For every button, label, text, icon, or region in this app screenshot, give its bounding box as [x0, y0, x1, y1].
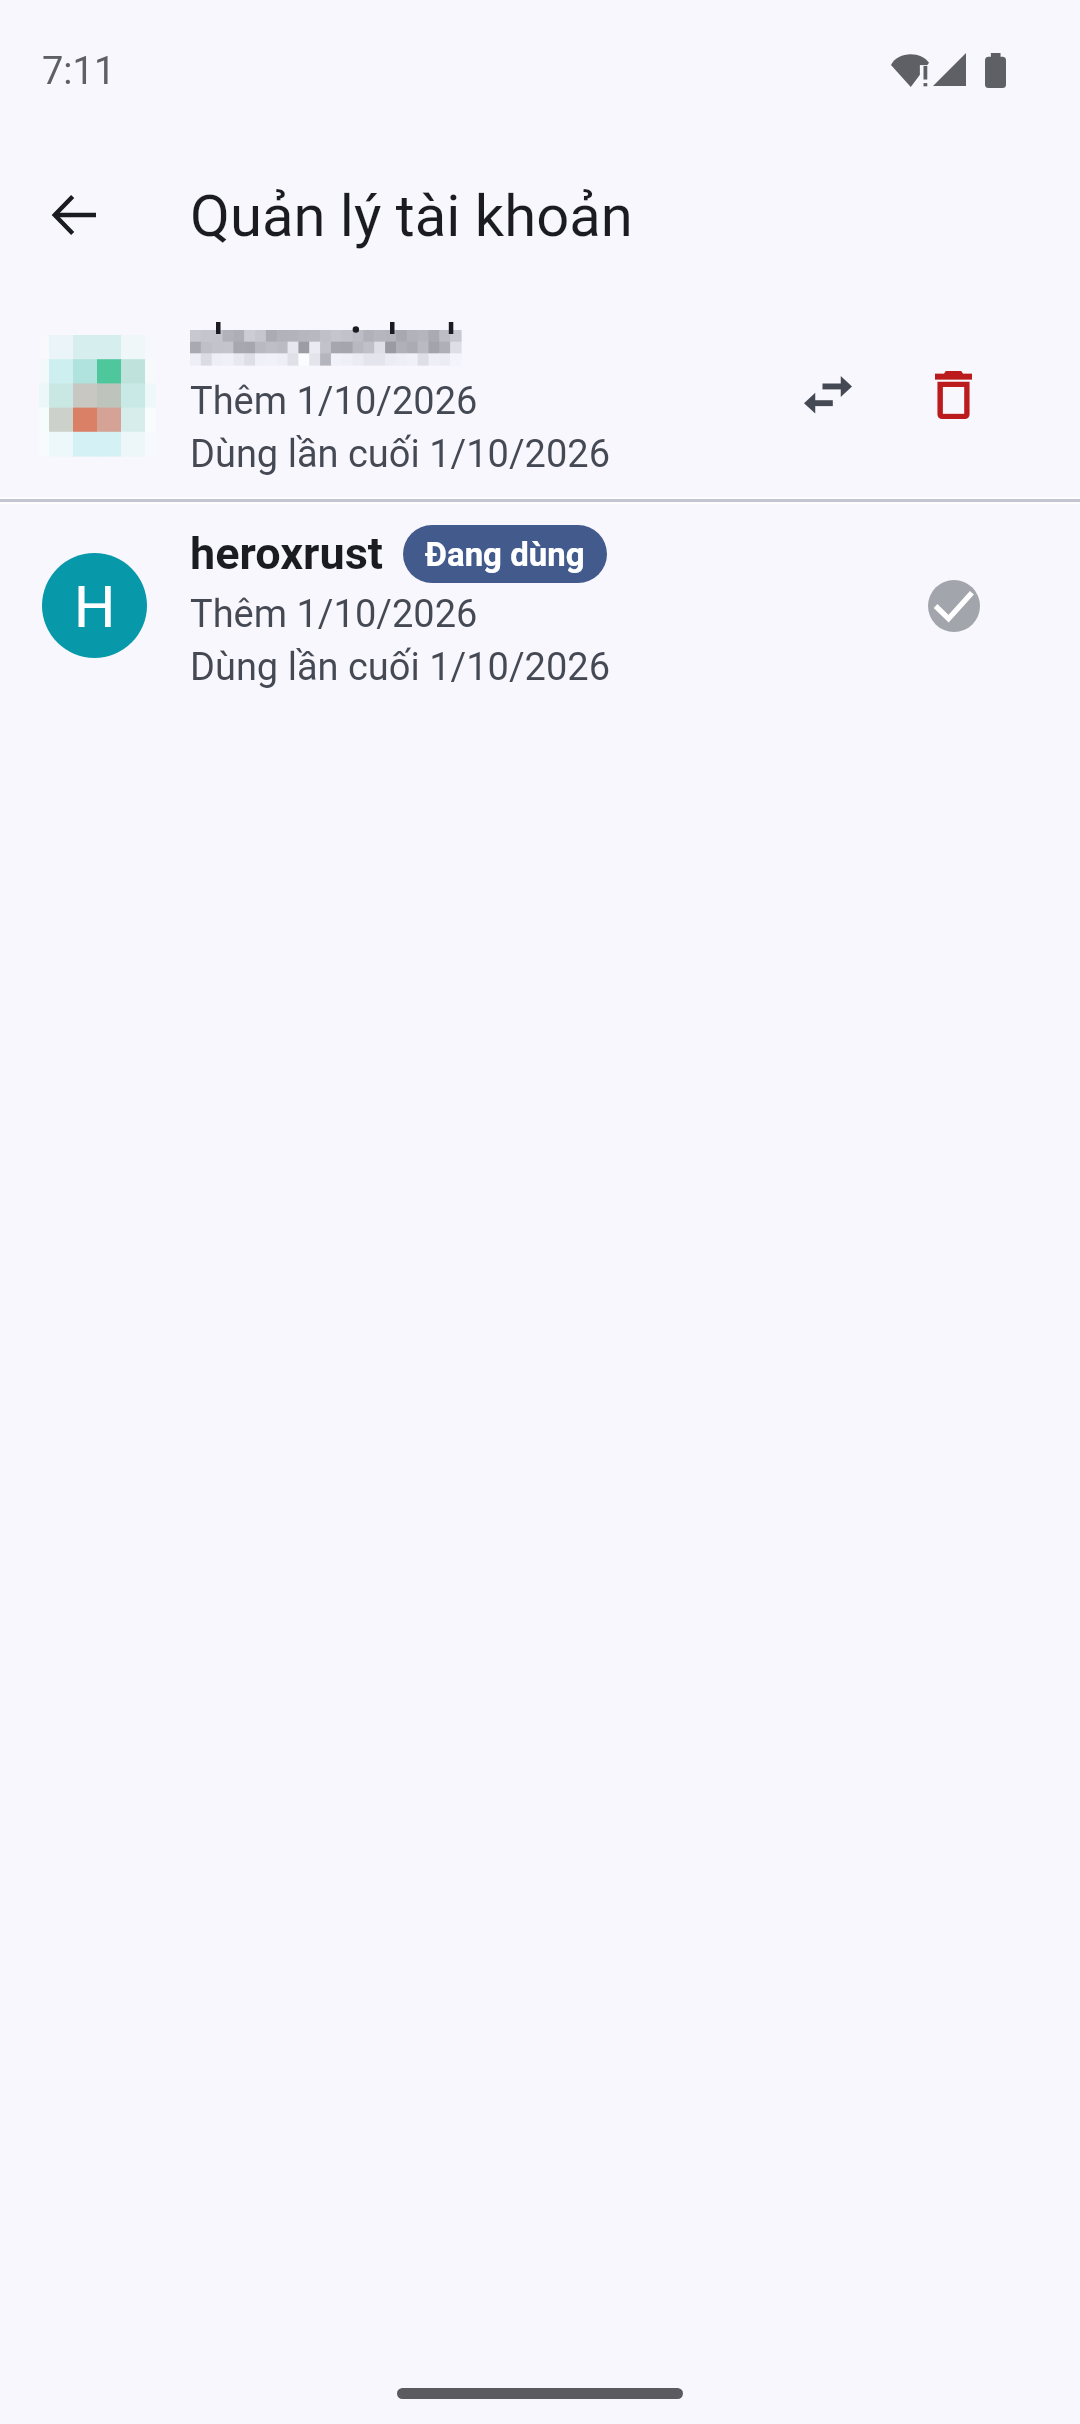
- staticText: Thêm 1/10/2026: [190, 592, 478, 637]
- staticText: heroxrust: [190, 527, 384, 580]
- button[interactable]: H: [0, 501, 1080, 711]
- button[interactable]: Active account: [906, 558, 1002, 654]
- staticText: Quản lý tài khoản: [190, 182, 633, 250]
- staticText: Dùng lần cuối 1/10/2026: [190, 432, 610, 477]
- button[interactable]: Delete account: [906, 347, 1001, 442]
- staticText: Đang dùng: [425, 535, 585, 574]
- staticText: Thêm 1/10/2026: [190, 379, 478, 424]
- staticText: 7:11: [42, 49, 116, 94]
- staticText: H: [74, 573, 116, 641]
- button[interactable]: Thêm 1/10/2026: [0, 290, 1080, 498]
- button[interactable]: Switch account: [780, 347, 875, 442]
- staticText: Dùng lần cuối 1/10/2026: [190, 645, 610, 690]
- button[interactable]: Back: [26, 167, 122, 263]
